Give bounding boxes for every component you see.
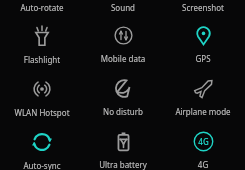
- button[interactable]: Auto-rotate: [3, 0, 81, 20]
- staticText: 4G: [164, 159, 242, 170]
- button[interactable]: Ultra battery: [84, 131, 162, 170]
- staticText: GPS: [164, 53, 242, 64]
- button[interactable]: Screenshot: [164, 0, 242, 20]
- button[interactable]: 4G: [164, 131, 242, 170]
- staticText: Auto-rotate: [3, 2, 81, 13]
- staticText: Auto-sync: [3, 160, 81, 170]
- button[interactable]: Flashlight: [3, 25, 81, 65]
- button[interactable]: Airplane mode: [164, 78, 242, 117]
- staticText: Sound: [84, 2, 162, 13]
- button[interactable]: WLAN Hotspot: [3, 78, 81, 118]
- staticText: Mobile data: [84, 53, 162, 64]
- button[interactable]: Auto-sync: [3, 131, 81, 170]
- button[interactable]: Sound: [84, 0, 162, 20]
- button[interactable]: Mobile data: [84, 25, 162, 64]
- staticText: Airplane mode: [164, 106, 242, 117]
- button[interactable]: GPS: [164, 25, 242, 64]
- staticText: Flashlight: [3, 54, 81, 65]
- staticText: WLAN Hotspot: [3, 107, 81, 118]
- button[interactable]: No disturb: [84, 78, 162, 117]
- staticText: 4G: [198, 136, 209, 147]
- staticText: Screenshot: [164, 2, 242, 13]
- staticText: Ultra battery: [84, 159, 162, 170]
- staticText: No disturb: [84, 106, 162, 117]
